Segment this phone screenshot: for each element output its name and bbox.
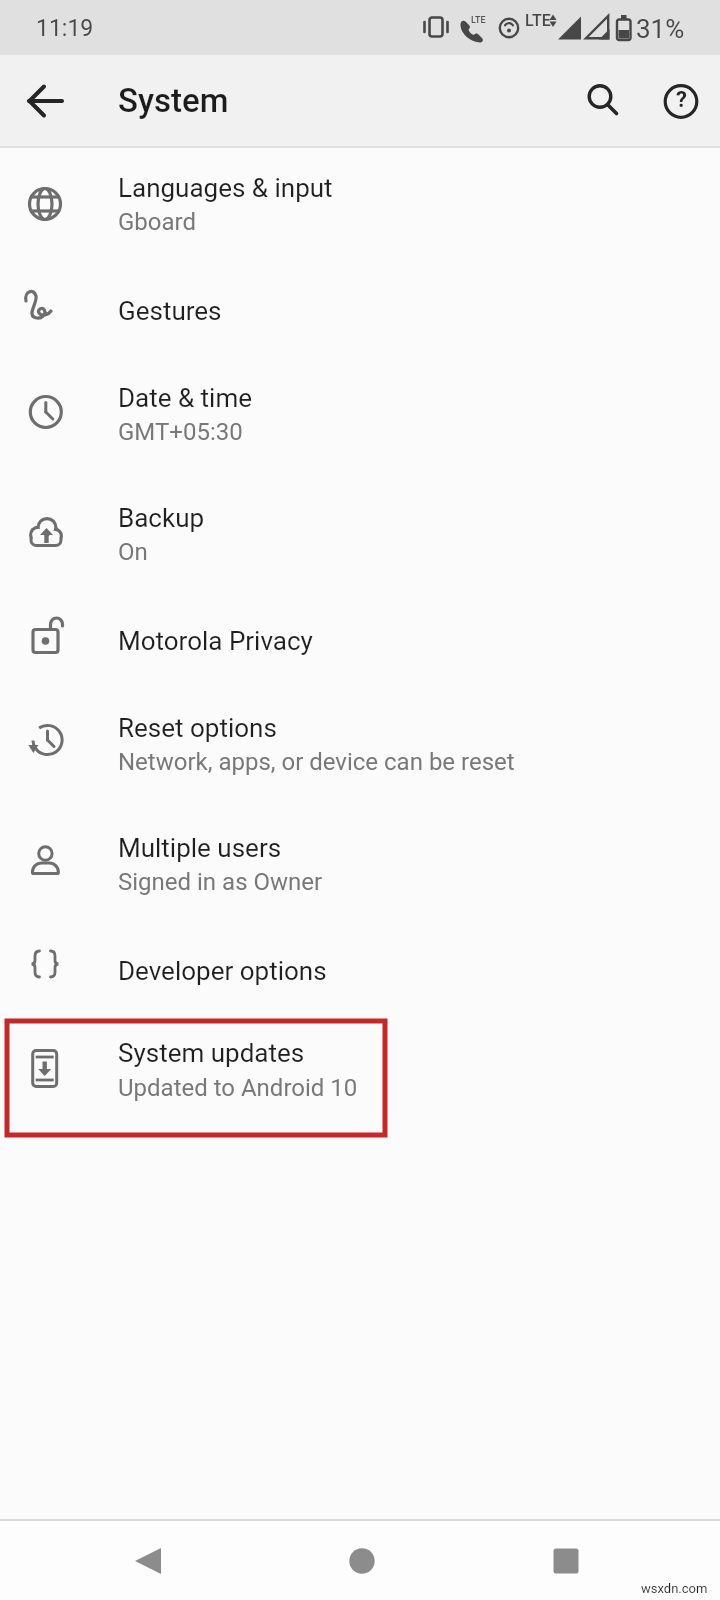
staticText: 11:19 (36, 15, 94, 42)
button[interactable] (571, 72, 629, 130)
button[interactable] (330, 1529, 394, 1593)
staticText: LTE (525, 11, 551, 30)
button[interactable] (10, 66, 80, 136)
button[interactable]: Languages & input (0, 148, 720, 268)
staticText: On (118, 538, 148, 566)
button[interactable]: Motorola Privacy (0, 598, 720, 688)
staticText: System updates (118, 1038, 305, 1068)
staticText: Backup (118, 503, 205, 533)
staticText: Signed in as Owner (118, 868, 323, 896)
staticText: Gboard (118, 208, 197, 236)
staticText: Developer options (118, 956, 327, 986)
staticText: GMT+05:30 (118, 418, 243, 446)
staticText: wsxdn.com (641, 1581, 708, 1596)
staticText: LTE (471, 15, 486, 26)
staticText: Languages & input (118, 173, 333, 203)
staticText: Date & time (118, 383, 252, 413)
button[interactable]: Multiple users (0, 808, 720, 928)
staticText: Network, apps, or device can be reset (118, 748, 515, 776)
button[interactable]: Date & time (0, 358, 720, 478)
button[interactable]: Gestures (0, 268, 720, 358)
staticText: Motorola Privacy (118, 626, 313, 656)
staticText: Multiple users (118, 833, 282, 863)
button[interactable]: ? (652, 72, 710, 130)
staticText: Reset options (118, 713, 277, 743)
staticText: Gestures (118, 296, 222, 326)
staticText: Updated to Android 10 (118, 1074, 358, 1102)
button[interactable]: System updates (0, 1018, 720, 1138)
button[interactable] (534, 1529, 598, 1593)
button[interactable]: Developer options (0, 928, 720, 1018)
button[interactable]: Backup (0, 478, 720, 598)
staticText: System (118, 81, 229, 120)
staticText: 31% (636, 14, 685, 44)
button[interactable]: Reset options (0, 688, 720, 808)
button[interactable] (116, 1529, 180, 1593)
staticText: ? (676, 87, 687, 113)
